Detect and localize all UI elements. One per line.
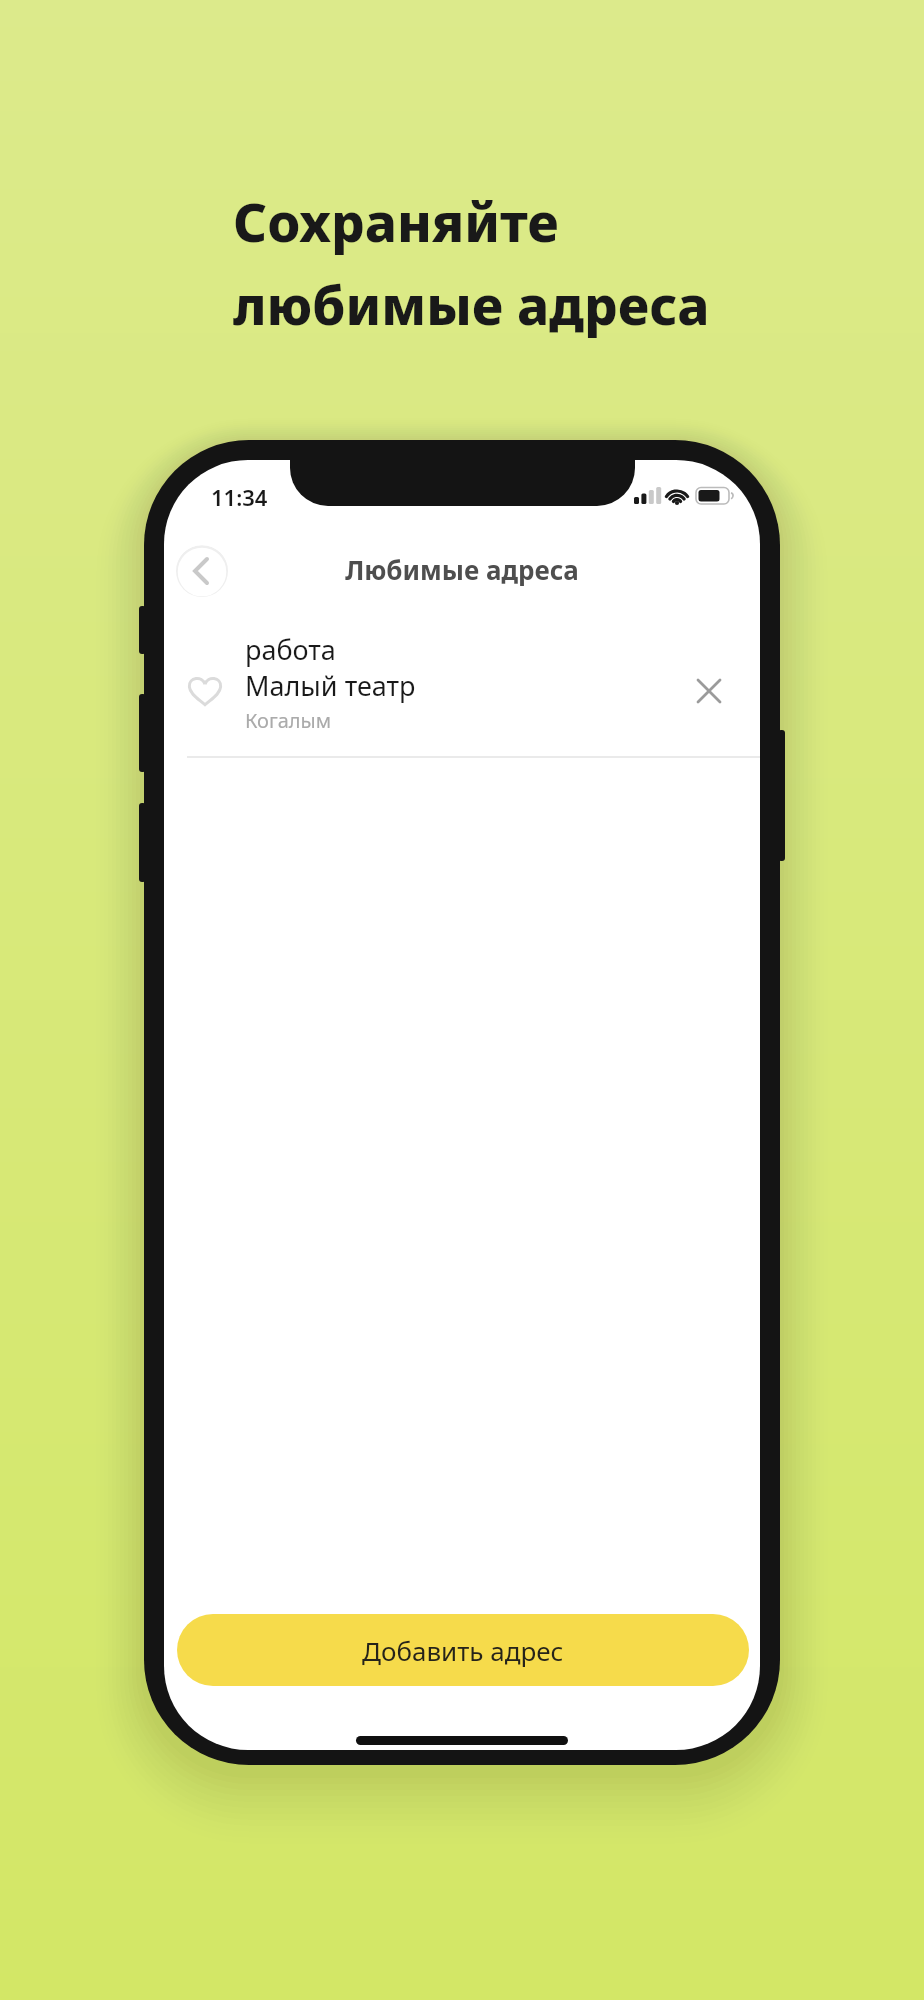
button[interactable] — [176, 545, 228, 597]
staticText: любимые адреса — [233, 268, 710, 340]
staticText: Любимые адреса — [164, 552, 760, 587]
staticText: работа — [245, 631, 336, 668]
staticText: Добавить адрес — [362, 1633, 564, 1668]
button[interactable] — [691, 673, 727, 709]
button[interactable]: Добавить адрес — [177, 1614, 749, 1686]
staticText: 11:34 — [211, 482, 268, 512]
staticText: Малый театр — [245, 667, 416, 704]
staticText: Сохраняйте — [233, 185, 559, 257]
staticText: Когалым — [245, 707, 332, 734]
button[interactable]: работа — [164, 625, 760, 757]
